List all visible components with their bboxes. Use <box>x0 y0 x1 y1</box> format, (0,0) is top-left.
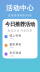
staticText: 发现更多精彩内容 <box>8 14 32 17</box>
button[interactable]: 线上讲座 <box>2 32 37 41</box>
staticText: 今日推荐活动 <box>5 21 35 28</box>
button[interactable]: 音乐现场 <box>2 50 37 58</box>
staticText: 精选活动 为你而来 <box>7 29 32 32</box>
staticText: 摄影展览 <box>9 43 21 46</box>
button[interactable]: 摄影展览 <box>2 41 37 50</box>
staticText: 活动中心 <box>6 4 34 12</box>
staticText: 查看详情 <box>9 38 13 39</box>
staticText: 线上讲座 <box>9 34 21 37</box>
staticText: 音乐现场 <box>9 51 21 55</box>
staticText: 查看详情 <box>9 46 13 48</box>
